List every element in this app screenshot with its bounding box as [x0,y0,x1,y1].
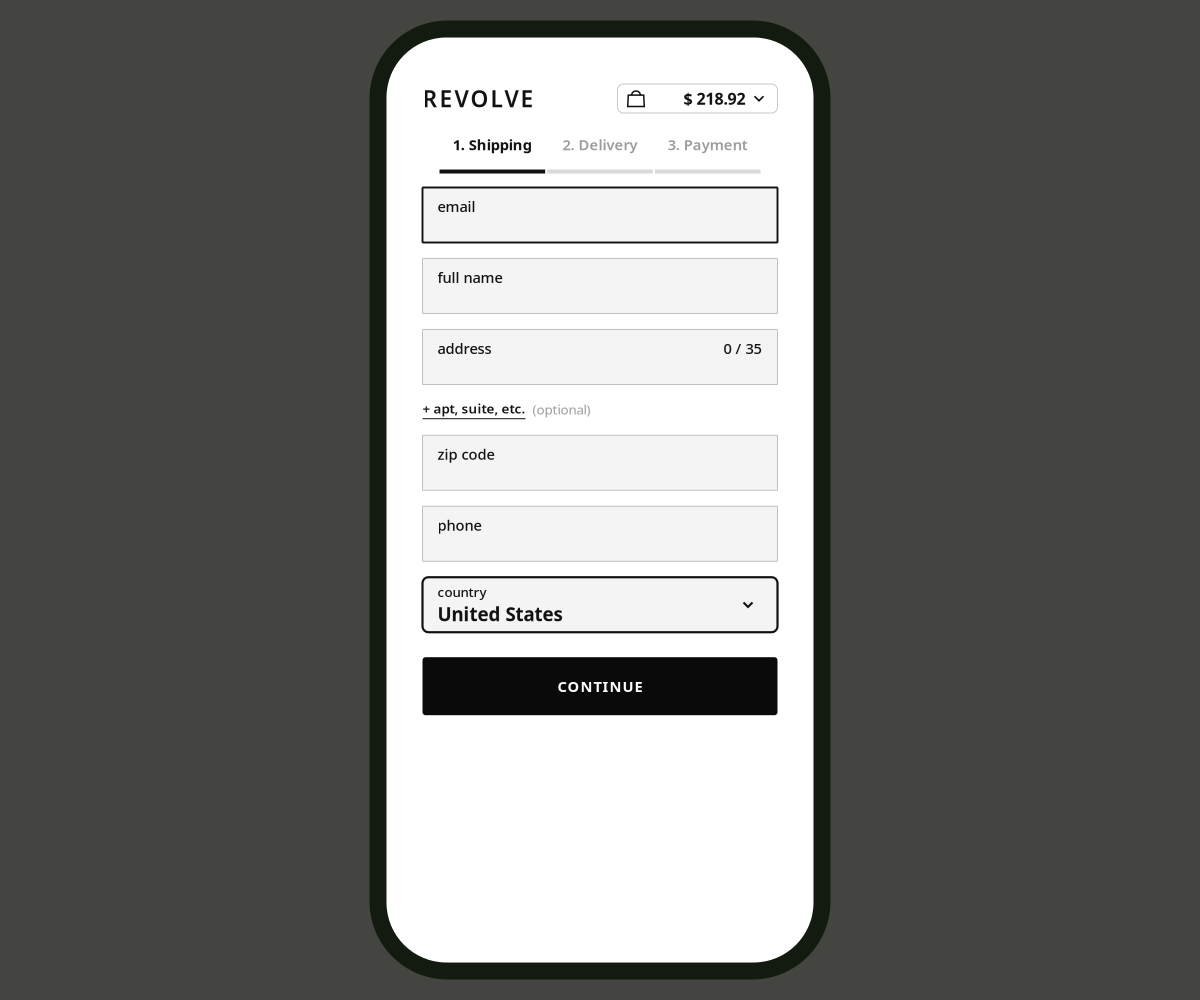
staticText: 0 / 35 [723,338,761,358]
staticText: + apt, suite, etc. [422,399,525,417]
button[interactable]: country [422,577,777,632]
staticText: country [437,583,486,601]
button[interactable]: $ 218.92 [617,84,777,113]
button[interactable]: phone [422,506,777,561]
button[interactable]: 2. Delivery [547,134,653,154]
button[interactable]: email [422,187,777,242]
staticText: C O N T I N U E [557,676,642,696]
button[interactable]: address [422,329,777,384]
staticText: (optional) [532,400,590,418]
button[interactable]: + apt, suite, etc. [422,399,525,419]
button[interactable]: full name [422,258,777,313]
staticText: zip code [437,444,494,464]
staticText: R E V O L V E [422,83,533,113]
staticText: $ 218.92 [683,88,745,109]
button[interactable]: 1. Shipping [439,134,545,154]
staticText: full name [437,267,502,287]
staticText: 2. Delivery [562,135,637,154]
staticText: phone [437,515,481,535]
staticText: United States [437,602,562,626]
staticText: address [437,338,491,358]
button[interactable]: R E V O L V E [422,83,533,113]
staticText: 1. Shipping [453,135,532,154]
staticText: email [437,196,475,216]
button[interactable]: zip code [422,435,777,490]
button[interactable]: 3. Payment [655,134,760,154]
staticText: 3. Payment [668,135,748,154]
button[interactable]: C O N T I N U E [422,657,777,715]
